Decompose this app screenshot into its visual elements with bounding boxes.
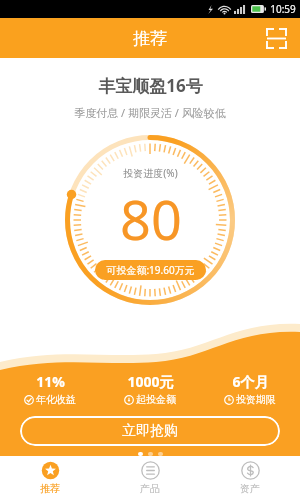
button[interactable]: 立即抢购 [20,416,280,446]
button[interactable]: 推荐 [0,456,100,500]
staticText: 6个月 [232,372,269,391]
staticText: 1000元 [127,372,174,391]
staticText: 可投金额:19.60万元 [106,263,195,277]
staticText: 推荐 [40,482,60,495]
staticText: 推荐 [133,28,167,49]
staticText: 丰宝顺盈16号 [98,74,203,97]
staticText: 季度付息 / 期限灵活 / 风险较低 [74,105,226,120]
staticText: 资产 [240,482,260,495]
button[interactable]: 资产 [200,456,300,500]
button[interactable]: 产品 [100,456,200,500]
staticText: 10:59 [270,2,296,16]
button[interactable]: Scan QR code [262,24,290,52]
staticText: 11% [36,372,65,391]
staticText: 立即抢购 [122,422,178,440]
staticText: 投资期限 [236,393,276,406]
staticText: 产品 [140,482,160,495]
staticText: 起投金额 [136,393,176,406]
staticText: 投资进度(%) [123,166,178,180]
staticText: 80 [120,182,182,256]
staticText: 年化收益 [36,393,76,406]
